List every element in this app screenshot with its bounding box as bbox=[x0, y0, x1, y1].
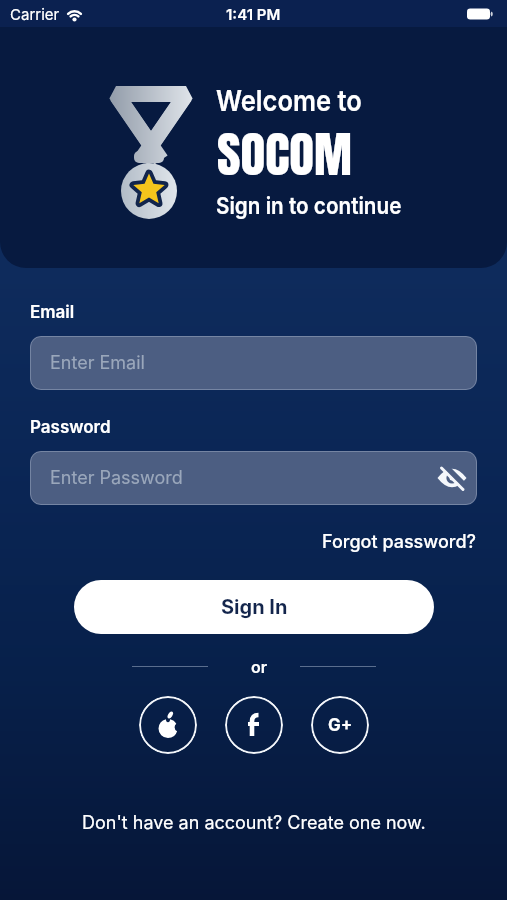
staticText: Welcome to bbox=[216, 83, 362, 118]
button[interactable]: Forgot password? bbox=[322, 531, 477, 553]
staticText: G+ bbox=[328, 715, 353, 736]
button[interactable]: Enter Password bbox=[30, 451, 477, 505]
staticText: Enter Email bbox=[50, 352, 145, 374]
staticText: 1:41 PM bbox=[226, 5, 281, 23]
button[interactable]: Don't have an account? Create one now. bbox=[82, 812, 426, 834]
staticText: or bbox=[251, 657, 268, 676]
staticText: Password bbox=[30, 417, 111, 438]
staticText: SOCOM bbox=[217, 119, 353, 191]
staticText: Sign In bbox=[221, 595, 288, 619]
button[interactable] bbox=[437, 463, 467, 493]
button[interactable] bbox=[225, 696, 283, 754]
staticText: Sign in to continue bbox=[216, 191, 402, 219]
button[interactable]: G+ bbox=[311, 696, 369, 754]
button[interactable]: Enter Email bbox=[30, 336, 477, 390]
staticText: Email bbox=[30, 302, 75, 323]
staticText: Enter Password bbox=[50, 467, 183, 489]
button[interactable] bbox=[139, 696, 197, 754]
button[interactable]: Sign In bbox=[74, 580, 434, 634]
staticText: Carrier bbox=[10, 5, 60, 23]
